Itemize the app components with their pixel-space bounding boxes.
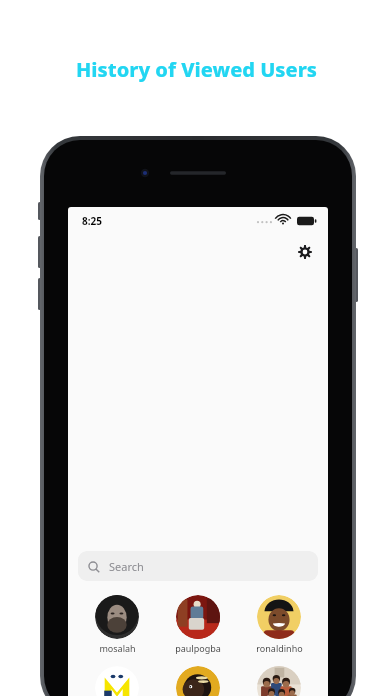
staticText: Search: [109, 559, 144, 574]
staticText: mosalah: [99, 642, 136, 654]
staticText: History of Viewed Users: [76, 56, 317, 83]
button[interactable]: Search: [78, 551, 318, 581]
button[interactable]: paulpogba: [162, 593, 234, 656]
button[interactable]: [243, 664, 315, 696]
staticText: paulpogba: [175, 642, 221, 654]
button[interactable]: mosalah: [81, 593, 153, 656]
button[interactable]: Settings: [292, 239, 318, 265]
staticText: ronaldinho: [256, 642, 303, 654]
button[interactable]: [81, 664, 153, 696]
button[interactable]: ronaldinho: [243, 593, 315, 656]
button[interactable]: [162, 664, 234, 696]
staticText: 8:25: [82, 214, 102, 228]
